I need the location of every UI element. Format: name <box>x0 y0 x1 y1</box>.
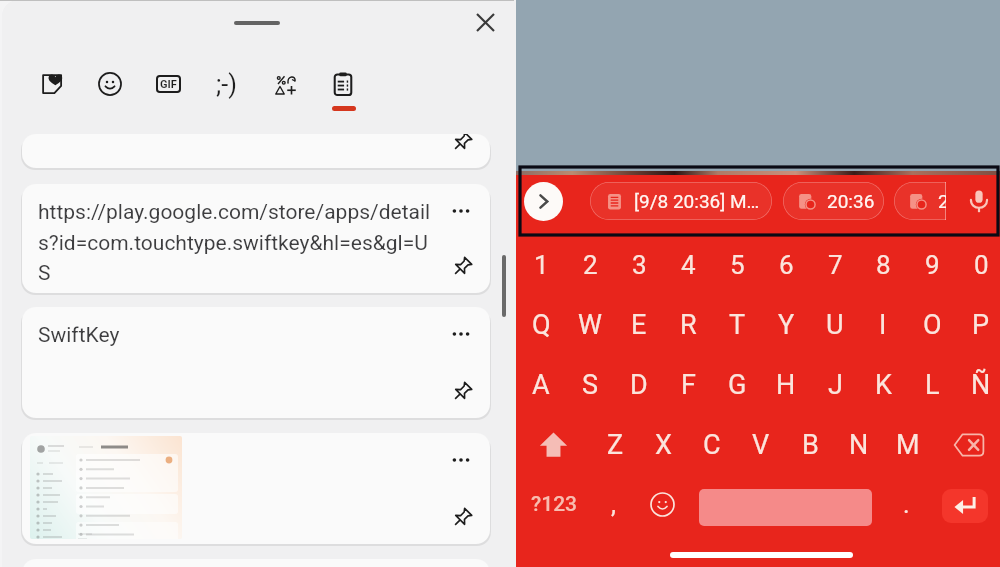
button[interactable]: 0 <box>959 239 1000 291</box>
button[interactable]: M <box>886 419 930 471</box>
button[interactable]: 7 <box>813 239 857 291</box>
button[interactable]: T <box>715 299 759 351</box>
staticText: C <box>703 429 721 461</box>
staticText: L <box>925 369 940 401</box>
button[interactable]: , <box>591 480 635 528</box>
button[interactable]: O <box>910 299 954 351</box>
staticText: 2 <box>583 250 598 280</box>
staticText: 2 <box>938 190 949 212</box>
button[interactable]: More options <box>22 433 490 544</box>
staticText: A <box>532 369 550 401</box>
button[interactable]: ?123 <box>527 480 581 528</box>
staticText: O <box>923 309 942 341</box>
button[interactable]: Z <box>593 419 637 471</box>
button[interactable]: V <box>739 419 783 471</box>
button[interactable]: I <box>861 299 905 351</box>
button[interactable]: 20:36 <box>783 182 884 220</box>
button[interactable]: N <box>837 419 881 471</box>
button[interactable]: U <box>813 299 857 351</box>
button[interactable]: 6 <box>764 239 808 291</box>
button[interactable]: Close <box>468 5 503 40</box>
staticText: U <box>826 309 844 341</box>
button[interactable]: Backspace <box>942 419 996 471</box>
staticText: N <box>849 429 869 461</box>
staticText: 20:36 <box>827 190 875 212</box>
button[interactable]: Pin <box>22 134 490 168</box>
button[interactable]: . <box>886 480 926 528</box>
button[interactable]: Pin <box>441 371 481 411</box>
button[interactable]: G <box>715 359 759 411</box>
button[interactable]: 1 <box>519 239 563 291</box>
staticText: 3 <box>632 250 647 280</box>
button[interactable]: Pin <box>441 246 481 286</box>
staticText: T <box>729 309 746 341</box>
button[interactable]: 9 <box>910 239 954 291</box>
staticText: F <box>681 369 696 401</box>
button[interactable]: 2 <box>894 182 995 220</box>
staticText: K <box>875 369 892 401</box>
button[interactable]: SwiftKey <box>22 307 490 418</box>
staticText: E <box>631 309 647 341</box>
button[interactable]: F <box>666 359 710 411</box>
button[interactable]: Q <box>519 299 563 351</box>
button[interactable]: C <box>690 419 734 471</box>
button[interactable]: P <box>959 299 1000 351</box>
button[interactable]: 4 <box>666 239 710 291</box>
button[interactable]: X <box>641 419 685 471</box>
button[interactable]: More options <box>439 189 483 233</box>
staticText: 8 <box>876 250 891 280</box>
button[interactable]: E <box>617 299 661 351</box>
button[interactable]: Pin <box>441 497 481 537</box>
staticText: Y <box>778 309 795 341</box>
button[interactable]: K <box>861 359 905 411</box>
button[interactable]: Emoji <box>86 60 134 108</box>
button[interactable]: GIF <box>144 60 192 108</box>
staticText: , <box>611 490 616 519</box>
staticText: 4 <box>681 250 696 280</box>
button[interactable]: Y <box>764 299 808 351</box>
staticText: P <box>972 309 990 341</box>
staticText: 5 <box>730 250 745 280</box>
staticText: Ñ <box>971 369 991 401</box>
button[interactable]: 8 <box>861 239 905 291</box>
button[interactable]: L <box>910 359 954 411</box>
button[interactable]: J <box>813 359 857 411</box>
button[interactable]: Voice input <box>946 178 1000 224</box>
button[interactable]: A <box>519 359 563 411</box>
button[interactable]: Translator <box>261 60 309 108</box>
staticText: 6 <box>779 250 794 280</box>
button[interactable]: 2 <box>568 239 612 291</box>
button[interactable]: Emoji <box>640 480 684 528</box>
button[interactable]: Stickers <box>28 60 76 108</box>
button[interactable]: 5 <box>715 239 759 291</box>
staticText: GIF <box>160 78 177 91</box>
staticText: W <box>578 309 602 341</box>
button[interactable]: B <box>788 419 832 471</box>
button[interactable]: H <box>764 359 808 411</box>
button[interactable]: Enter <box>942 489 988 523</box>
staticText: SwiftKey <box>38 323 120 348</box>
staticText: G <box>728 369 747 401</box>
button[interactable]: Pin <box>441 134 481 158</box>
button[interactable]: Space <box>699 489 872 526</box>
button[interactable]: S <box>568 359 612 411</box>
button[interactable]: [9/8 20:36] M… <box>590 182 772 220</box>
staticText: [9/8 20:36] M… <box>634 190 760 212</box>
button[interactable]: https://play.google.com/store/apps/detai… <box>22 184 490 293</box>
button[interactable]: R <box>666 299 710 351</box>
button[interactable]: Shift <box>527 419 579 471</box>
staticText: 0 <box>974 250 989 280</box>
button[interactable]: Ñ <box>959 359 1000 411</box>
button[interactable]: Emoticons <box>202 60 250 108</box>
button[interactable]: More options <box>439 438 483 482</box>
staticText: M <box>896 429 920 461</box>
staticText: 9 <box>925 250 940 280</box>
button[interactable]: W <box>568 299 612 351</box>
button[interactable]: Expand toolbar <box>524 182 563 221</box>
button[interactable]: Clipboard <box>319 60 367 108</box>
button[interactable]: 3 <box>617 239 661 291</box>
staticText: Q <box>532 309 551 341</box>
button[interactable]: More options <box>439 312 483 356</box>
button[interactable]: D <box>617 359 661 411</box>
